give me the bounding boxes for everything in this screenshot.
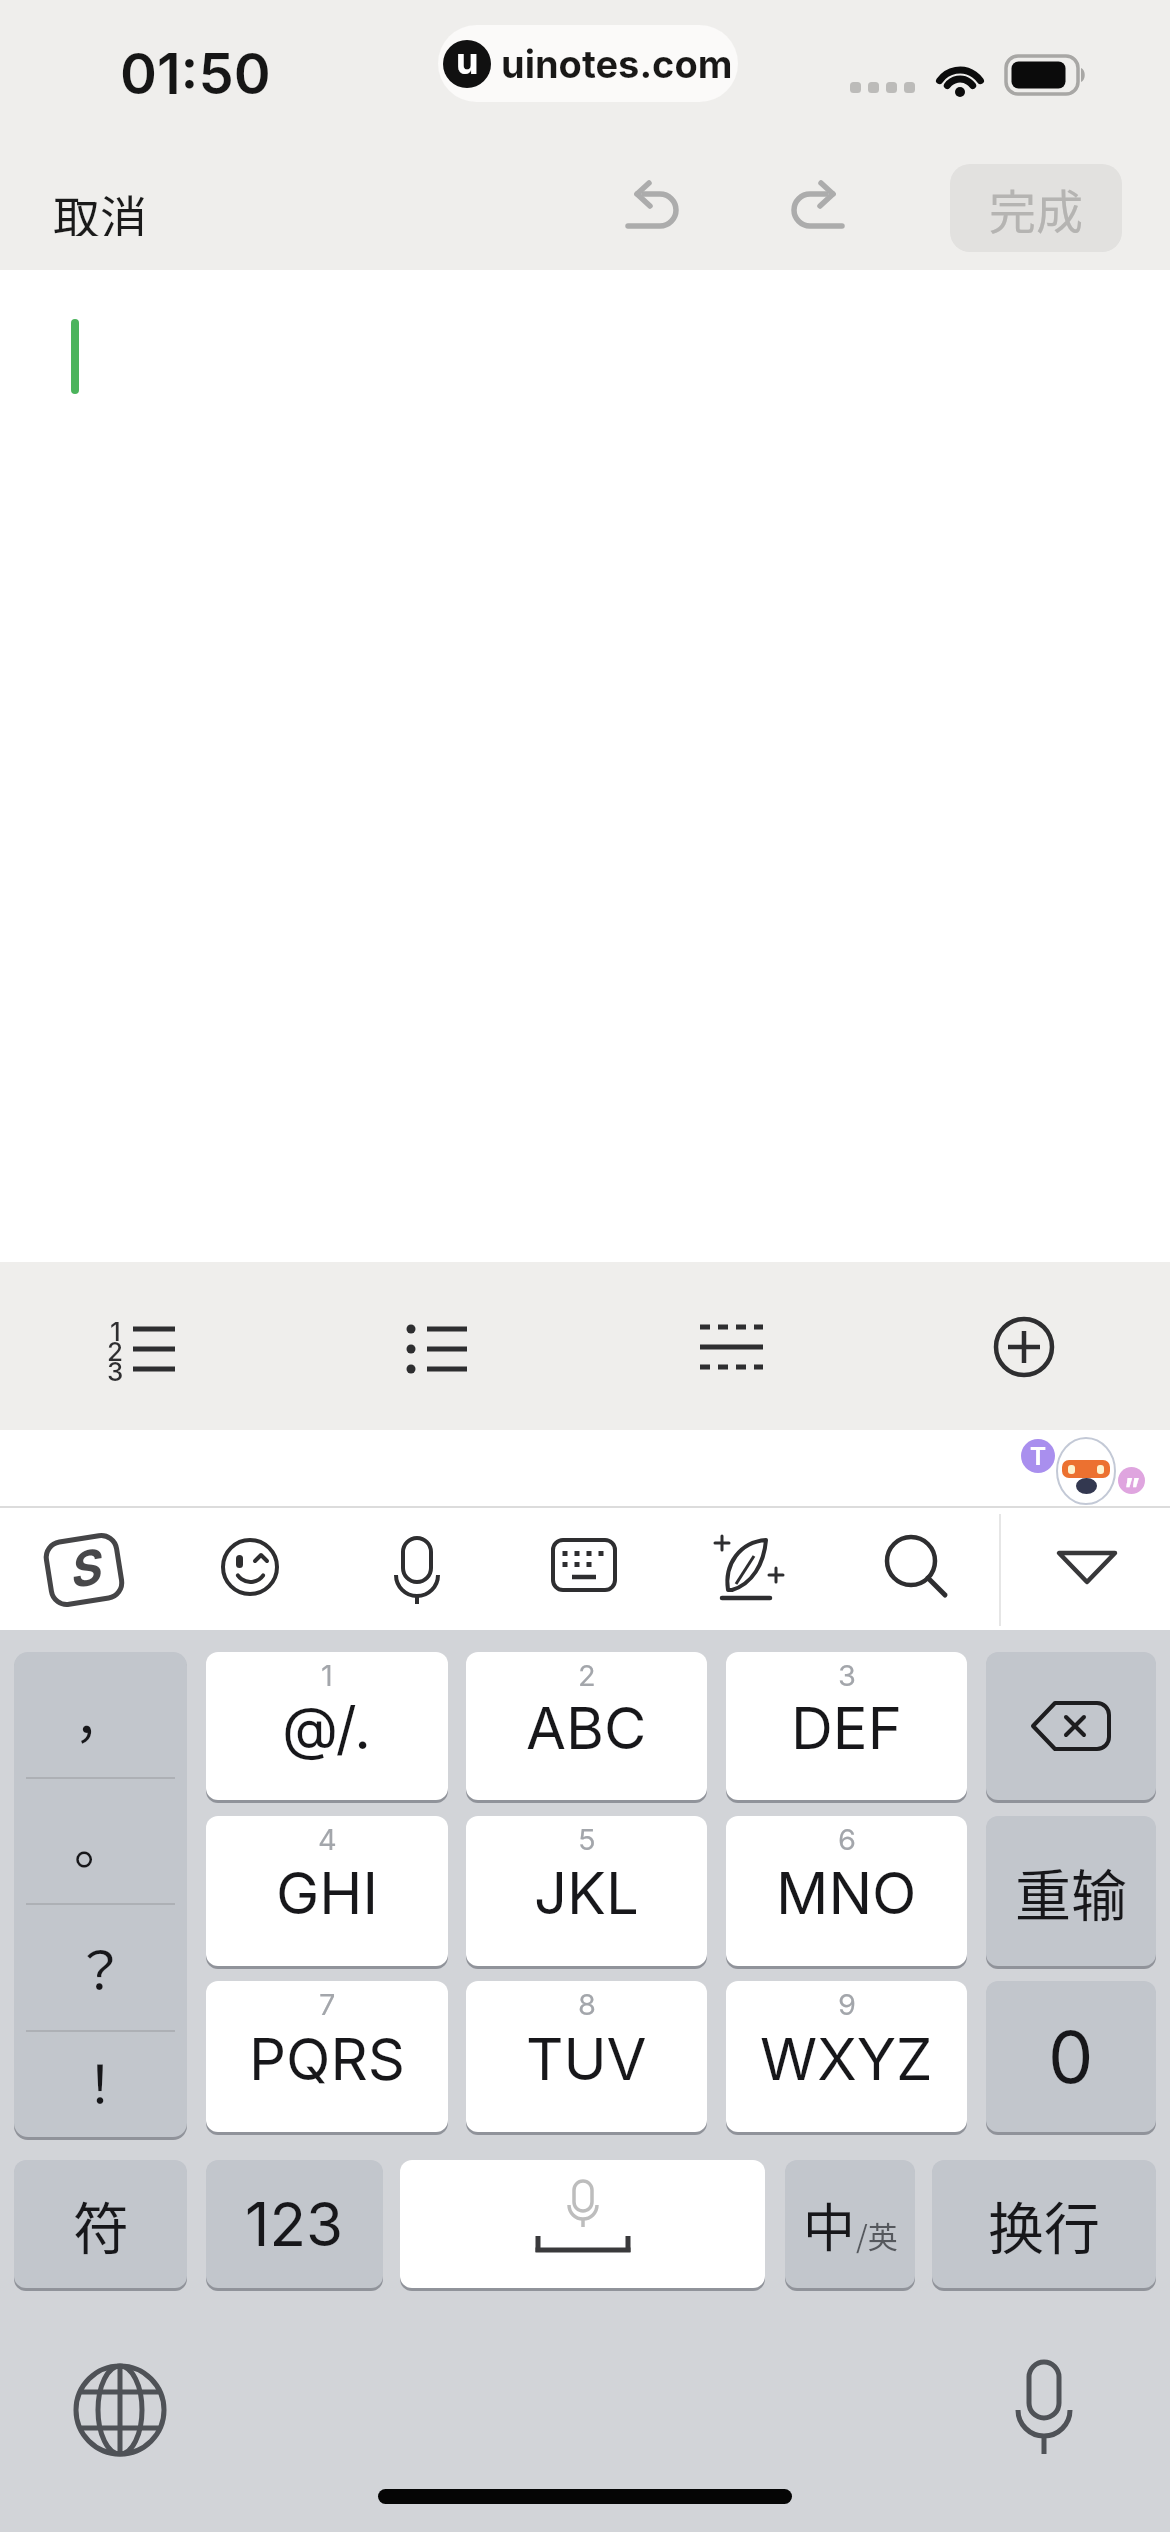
button[interactable]: 符 (14, 2160, 187, 2288)
staticText: /英 (856, 2213, 898, 2256)
staticText: ？ (74, 1930, 127, 2005)
button[interactable] (884, 1534, 950, 1600)
button[interactable] (1013, 2362, 1075, 2454)
button[interactable] (405, 1320, 469, 1380)
staticText: uinotes.com (501, 41, 733, 87)
staticText: MNO (776, 1858, 917, 1928)
button[interactable] (714, 1534, 786, 1604)
staticText: 3 (107, 1356, 124, 1382)
staticText: @/. (282, 1693, 372, 1763)
staticText: ” (1124, 1471, 1140, 1494)
staticText: DEF (791, 1693, 902, 1763)
button[interactable]: 0 (986, 1981, 1156, 2132)
button[interactable]: 完成 (950, 164, 1122, 252)
button[interactable] (624, 180, 680, 232)
button[interactable]: ， (14, 1652, 187, 1778)
button[interactable]: 5 (466, 1816, 707, 1966)
button[interactable] (700, 1320, 764, 1376)
staticText: GHI (276, 1858, 378, 1928)
staticText: 6 (838, 1822, 856, 1857)
button[interactable]: 3 (726, 1652, 967, 1800)
staticText: S (63, 1537, 104, 1599)
button[interactable] (994, 1317, 1054, 1377)
staticText: 8 (578, 1987, 596, 2022)
button[interactable]: 。 (14, 1778, 187, 1904)
staticText: T (1030, 1442, 1047, 1471)
button[interactable]: ？ (14, 1904, 187, 2031)
button[interactable] (72, 2362, 168, 2458)
button[interactable]: u (438, 25, 738, 102)
button[interactable]: 123 (206, 2160, 383, 2288)
staticText: u (456, 40, 479, 83)
button[interactable]: S (41, 1530, 127, 1610)
button[interactable]: 2 (466, 1652, 707, 1800)
button[interactable] (14, 1652, 187, 2137)
button[interactable]: 取消 (40, 180, 160, 236)
button[interactable]: 8 (466, 1981, 707, 2132)
button[interactable] (553, 1540, 615, 1592)
staticText: 。 (74, 1804, 127, 1879)
button[interactable] (221, 1538, 279, 1596)
staticText: 1 (110, 1316, 121, 1342)
staticText: 123 (245, 2188, 344, 2261)
staticText: 3 (838, 1658, 856, 1693)
staticText: 4 (318, 1822, 337, 1857)
staticText: ABC (526, 1693, 647, 1763)
button[interactable]: 换行 (932, 2160, 1156, 2288)
staticText: PQRS (249, 2024, 405, 2094)
button[interactable]: 9 (726, 1981, 967, 2132)
button[interactable]: 重输 (986, 1816, 1156, 1966)
button[interactable] (400, 2160, 765, 2288)
staticText: 符 (73, 2184, 129, 2265)
button[interactable] (389, 1538, 445, 1604)
staticText: 0 (1048, 2013, 1094, 2100)
staticText: 2 (107, 1336, 124, 1362)
staticText: ， (74, 1678, 127, 1753)
staticText: 5 (578, 1822, 596, 1857)
staticText: 取消 (53, 180, 147, 236)
staticText: WXYZ (760, 2024, 933, 2094)
staticText: 换行 (988, 2184, 1100, 2265)
button[interactable]: 6 (726, 1816, 967, 1966)
staticText: ！ (74, 2044, 127, 2119)
staticText: JKL (534, 1858, 639, 1928)
staticText: 9 (838, 1987, 856, 2022)
button[interactable] (986, 1652, 1156, 1800)
staticText: 2 (578, 1658, 596, 1693)
button[interactable] (790, 180, 846, 232)
button[interactable]: 1 (206, 1652, 448, 1800)
staticText: 中 (803, 2187, 856, 2262)
staticText: 7 (319, 1987, 336, 2022)
button[interactable] (1056, 1548, 1118, 1588)
staticText: 重输 (1015, 1851, 1127, 1932)
staticText: 完成 (989, 174, 1083, 242)
button[interactable]: ！ (14, 2026, 187, 2137)
staticText: 01:50 (120, 40, 271, 108)
staticText: TUV (526, 2024, 647, 2094)
button[interactable]: 4 (206, 1816, 448, 1966)
staticText: 1 (321, 1658, 333, 1693)
button[interactable]: 7 (206, 1981, 448, 2132)
button[interactable]: 中 (785, 2160, 915, 2288)
button[interactable] (100, 1295, 210, 1399)
